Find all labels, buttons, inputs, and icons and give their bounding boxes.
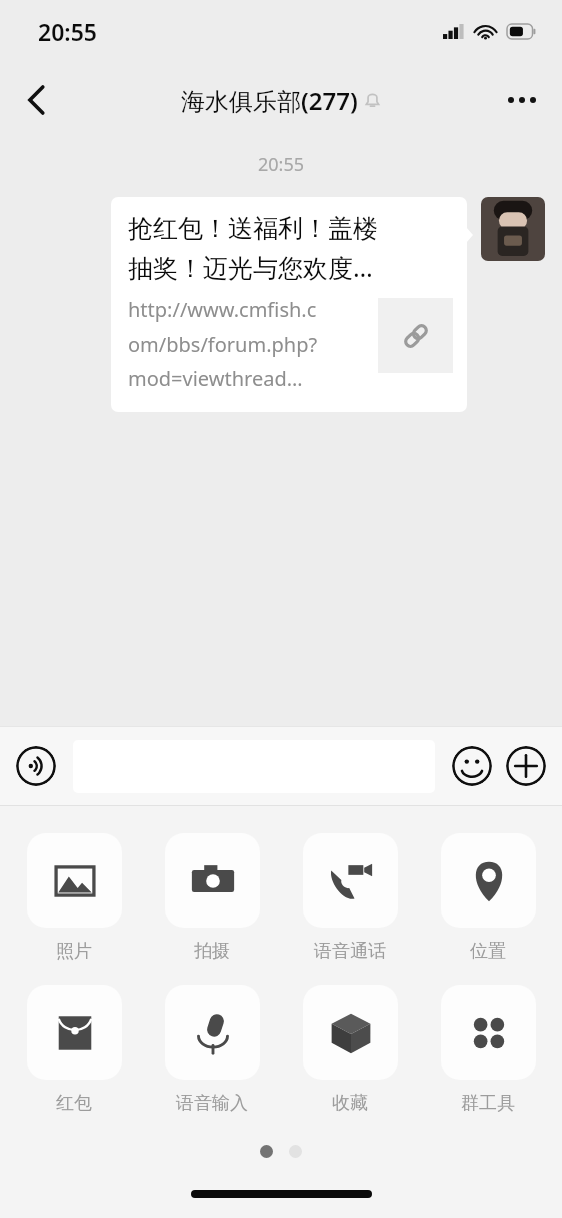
button[interactable]: 抢红包！送福利！盖楼 抽奖！迈光与您欢度… [111,197,467,412]
staticText: 拍摄 [194,940,230,963]
staticText: 20:55 [0,152,562,177]
button[interactable]: 语音通话 [300,833,400,963]
button[interactable]: 拍摄 [162,833,262,963]
button[interactable]: More functions [506,746,546,786]
button[interactable]: 群工具 [438,985,538,1115]
button[interactable]: Avatar [481,197,545,261]
staticText: 照片 [56,940,92,963]
staticText: 20:55 [38,16,97,47]
staticText: 海水俱乐部(277) [181,84,358,117]
staticText: 群工具 [461,1092,515,1115]
button[interactable]: 语音输入 [162,985,262,1115]
button[interactable]: 照片 [24,833,124,963]
staticText: 抢红包！送福利！盖楼 抽奖！迈光与您欢度… [128,213,378,284]
staticText: 语音输入 [176,1092,248,1115]
button[interactable]: Emoji [452,746,492,786]
staticText: 语音通话 [314,940,386,963]
button[interactable]: 收藏 [300,985,400,1115]
staticText: 位置 [470,940,506,963]
staticText: 收藏 [332,1092,368,1115]
button[interactable]: Voice input [16,746,56,786]
staticText: 红包 [56,1092,92,1115]
staticText: http://www.cmfish.c om/bbs/forum.php? mo… [128,296,368,392]
button[interactable]: Back [12,76,60,124]
button[interactable]: 红包 [24,985,124,1115]
button[interactable]: 位置 [438,833,538,963]
button[interactable]: More options [496,74,548,126]
